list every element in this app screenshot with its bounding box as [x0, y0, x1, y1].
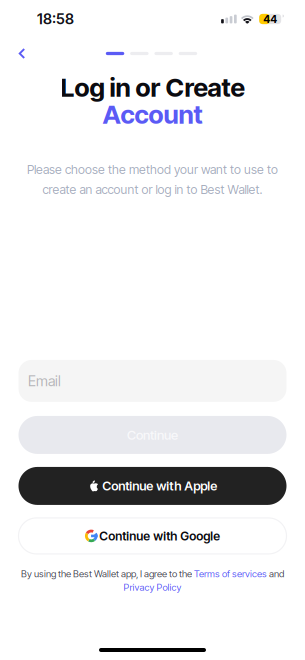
staticText: Please choose the method your want to us…: [27, 162, 278, 177]
staticText: By using the Best Wallet app, I agree to…: [21, 568, 194, 579]
staticText: Log in or Create: [60, 72, 244, 103]
staticText: and: [267, 568, 284, 579]
button[interactable]: Continue: [18, 416, 286, 454]
staticText: Privacy Policy: [123, 581, 181, 593]
staticText: Continue with Apple: [102, 478, 217, 494]
staticText: Continue with Google: [99, 528, 220, 543]
staticText: Email: [28, 372, 61, 390]
staticText: create an account or log in to Best Wall…: [42, 182, 262, 197]
button[interactable]: Continue with Apple: [18, 467, 286, 505]
staticText: Continue: [127, 427, 178, 443]
staticText: Terms of services: [194, 568, 267, 579]
staticText: 18:58: [37, 10, 74, 28]
button[interactable]: Continue with Google: [18, 518, 286, 554]
staticText: Account: [102, 99, 202, 130]
button[interactable]: Back: [9, 41, 35, 65]
staticText: 44: [263, 12, 277, 25]
